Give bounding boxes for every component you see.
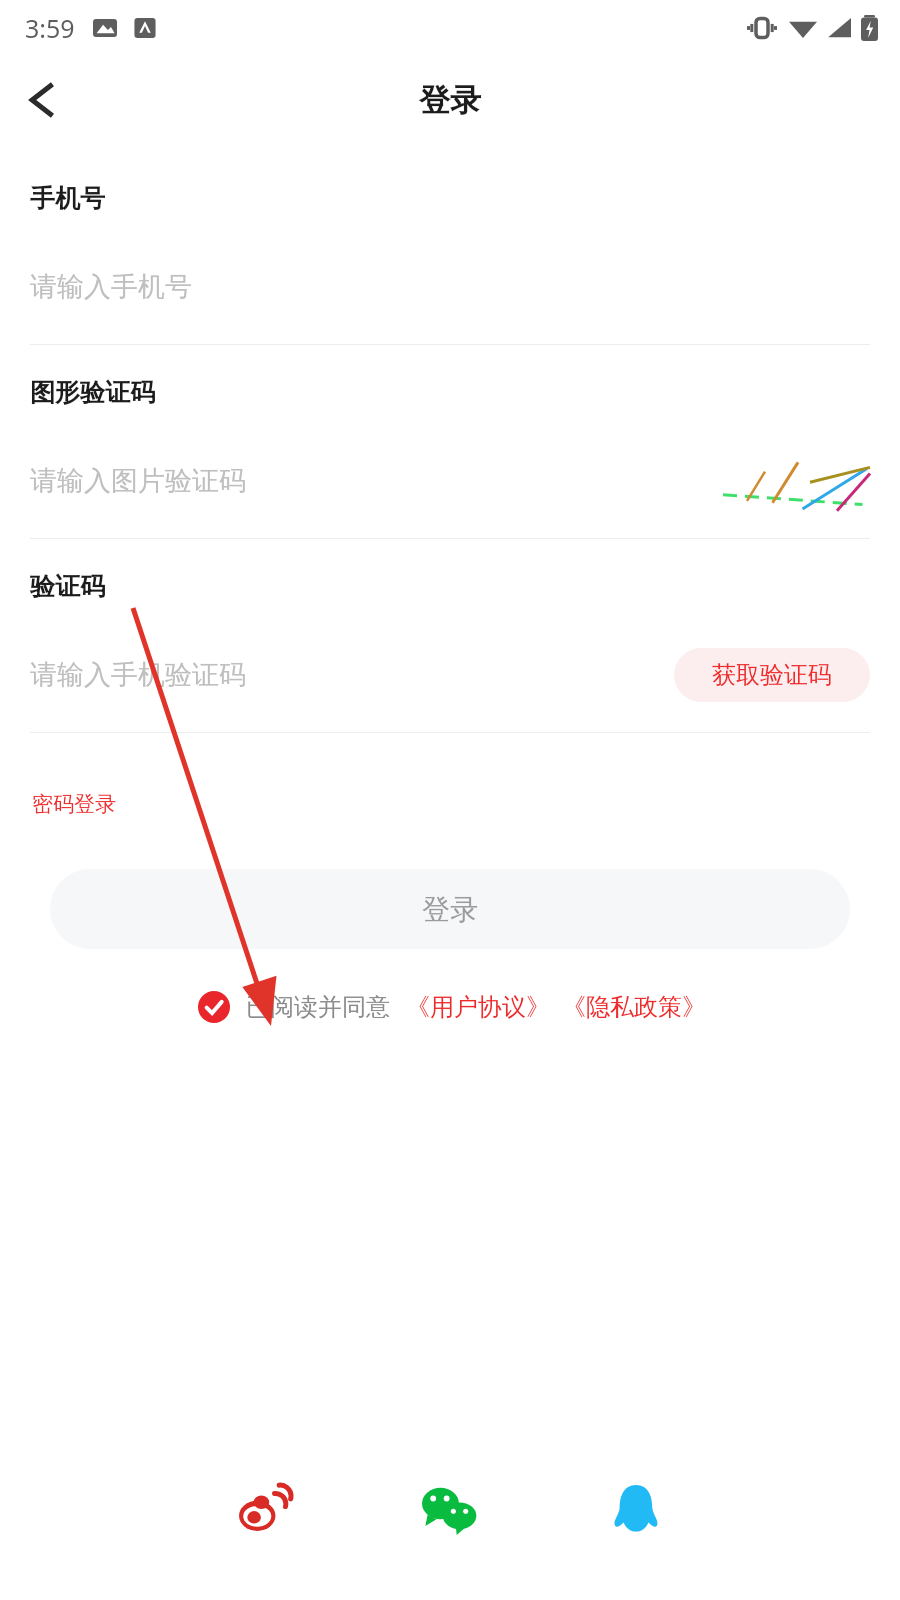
staticText: 图形验证码: [30, 377, 155, 408]
staticText: 3:59: [25, 11, 75, 45]
staticText: 已阅读并同意: [246, 992, 390, 1022]
staticText: 《隐私政策》: [562, 992, 706, 1022]
staticText: 《用户协议》: [406, 992, 550, 1022]
button[interactable]: Back: [14, 71, 72, 129]
button[interactable]: 请输入手机验证码: [30, 644, 674, 706]
staticText: 请输入手机验证码: [30, 658, 246, 692]
staticText: 请输入图片验证码: [30, 464, 246, 498]
staticText: 手机号: [30, 183, 105, 214]
staticText: 获取验证码: [712, 660, 832, 690]
staticText: 登录: [419, 81, 481, 120]
button[interactable]: Agree checkbox: [194, 987, 234, 1027]
button[interactable]: Refresh captcha: [720, 450, 870, 512]
staticText: 密码登录: [32, 791, 116, 817]
staticText: 请输入手机号: [30, 270, 192, 304]
button[interactable]: 登录: [50, 869, 850, 949]
button[interactable]: 密码登录: [30, 787, 118, 821]
button[interactable]: 请输入图片验证码: [30, 450, 720, 512]
button[interactable]: Login with QQ: [598, 1470, 674, 1546]
button[interactable]: 获取验证码: [674, 648, 870, 702]
button[interactable]: 《用户协议》: [406, 992, 550, 1022]
button[interactable]: Login with Weibo: [226, 1470, 302, 1546]
button[interactable]: Login with WeChat: [412, 1470, 488, 1546]
button[interactable]: 请输入手机号: [30, 256, 870, 318]
button[interactable]: 《隐私政策》: [562, 992, 706, 1022]
staticText: 登录: [422, 892, 478, 927]
staticText: 验证码: [30, 571, 105, 602]
